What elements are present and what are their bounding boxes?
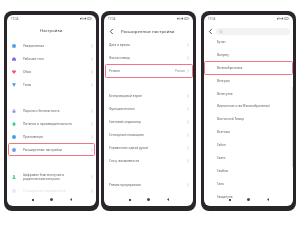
staticText: Бутан [217,40,226,44]
staticText: Световой индикатор [109,120,187,124]
staticText: Регион [109,69,175,73]
button[interactable]: Recents [225,195,234,204]
button[interactable]: Home [244,195,253,204]
button[interactable]: Recents [28,195,37,204]
staticText: 17:34 [208,17,216,21]
button[interactable]: Home [47,195,56,204]
staticText: Виргинские о-ва (Великобритания) [217,104,270,108]
button[interactable]: Вьетнам [204,125,293,138]
staticText: Цифровое благополучие и родительский кон… [23,173,91,181]
staticText: Вануату [217,53,229,57]
button[interactable]: Темы [7,78,96,91]
button[interactable]: Венгрия [204,74,293,87]
button[interactable]: Специальные возможности [7,184,96,197]
staticText: Настройки [40,28,63,34]
button[interactable]: Гана [204,177,293,190]
button[interactable]: Гваделупа [204,190,293,203]
staticText: Режим предприятия [109,183,187,187]
staticText: Гваделупа [217,195,233,199]
button[interactable]: Беспроводный экран [104,89,193,102]
button[interactable]: Режим предприятия [104,178,193,191]
button[interactable]: Сенсорный помощник [104,128,193,141]
button[interactable]: Back [163,195,172,204]
button[interactable]: Питание и производительность [7,117,96,130]
staticText: Восточный Тимор [217,117,245,121]
staticText: Венесуэла [217,92,233,96]
button[interactable]: Функции кнопок [104,102,193,115]
button[interactable]: Гаити [204,151,293,164]
button[interactable]: Восточный Тимор [204,112,293,125]
staticText: 17:34 [11,17,19,21]
button[interactable]: Search [216,28,290,35]
button[interactable]: Back [263,195,272,204]
button[interactable]: Цифровое благополучие и родительский кон… [7,170,96,183]
staticText: Пароли и безопасность [23,109,91,113]
button[interactable]: Приложения [7,130,96,143]
staticText: Рабочий стол [23,57,91,61]
button[interactable]: Спец. возможности [104,154,193,167]
button[interactable]: Регион [104,64,193,77]
button[interactable]: Гамбия [204,164,293,177]
staticText: Расширенные настройки [23,148,91,152]
staticText: Сенсорный помощник [109,133,187,137]
staticText: Обои [23,70,91,74]
staticText: Россия [175,69,185,73]
button[interactable]: Рабочий стол [7,52,96,65]
button[interactable]: Back [206,27,215,36]
button[interactable]: Recents [125,195,134,204]
button[interactable]: Дата и время [104,38,193,51]
staticText: Уведомления [23,44,91,48]
button[interactable]: Пароли и безопасность [7,104,96,117]
button[interactable]: Уведомления [7,39,96,52]
staticText: Габон [217,143,226,147]
button[interactable]: Габон [204,138,293,151]
staticText: Гамбия [217,169,229,173]
staticText: Гана [217,182,224,186]
staticText: Венгрия [217,79,230,83]
staticText: Великобритания [217,66,243,70]
staticText: Спец. возможности [109,159,187,163]
button[interactable]: Бутан [204,35,293,48]
button[interactable]: Back [66,195,75,204]
button[interactable]: Великобритания [204,61,293,74]
staticText: Дата и время [109,43,187,47]
button[interactable]: Световой индикатор [104,115,193,128]
button[interactable]: Виргинские о-ва (Великобритания) [204,99,293,112]
button[interactable]: Языки и ввод [104,51,193,64]
staticText: Языки и ввод [109,56,187,60]
button[interactable]: Управление одной рукой [104,141,193,154]
staticText: Функции кнопок [109,107,187,111]
staticText: Беспроводный экран [109,94,187,98]
button[interactable]: Home [144,195,153,204]
staticText: 17:34 [108,17,116,21]
staticText: Расширенные настройки [121,28,175,34]
staticText: Темы [23,83,91,87]
staticText: Питание и производительность [23,122,91,126]
staticText: Специальные возможности [23,189,91,193]
button[interactable]: Расширенные настройки [7,143,96,156]
staticText: Управление одной рукой [109,146,187,150]
staticText: Приложения [23,135,91,139]
button[interactable]: Венесуэла [204,87,293,100]
button[interactable]: Вануату [204,48,293,61]
button[interactable]: Back [107,27,116,36]
staticText: Вьетнам [217,130,230,134]
button[interactable]: Обои [7,65,96,78]
staticText: Гаити [217,156,226,160]
